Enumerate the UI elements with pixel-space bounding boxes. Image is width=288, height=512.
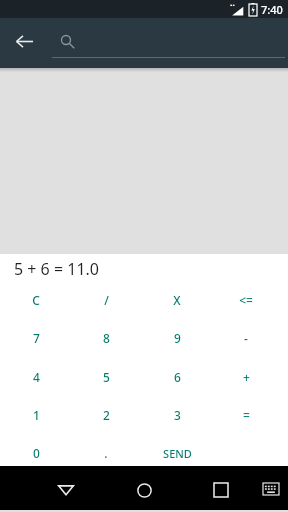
- staticText: 7: [33, 330, 40, 346]
- staticText: 2: [103, 407, 110, 423]
- button[interactable]: 6: [146, 359, 208, 395]
- button[interactable]: Recent apps: [201, 470, 241, 510]
- staticText: 5 + 6 = 11.0: [14, 258, 99, 280]
- staticText: -: [244, 330, 248, 346]
- button[interactable]: X: [146, 282, 208, 318]
- staticText: 7:40: [261, 2, 283, 17]
- button[interactable]: Switch keyboard: [256, 474, 286, 504]
- button[interactable]: 0: [5, 435, 67, 471]
- button[interactable]: +: [215, 359, 277, 395]
- button[interactable]: 7: [5, 320, 67, 356]
- button[interactable]: -: [215, 320, 277, 356]
- staticText: 6: [174, 369, 181, 385]
- staticText: 5: [103, 369, 110, 385]
- staticText: C: [32, 292, 40, 308]
- button[interactable]: 5: [75, 359, 137, 395]
- button[interactable]: 1: [5, 397, 67, 433]
- button[interactable]: Home: [124, 470, 164, 510]
- staticText: +: [243, 369, 250, 385]
- button[interactable]: C: [5, 282, 67, 318]
- button[interactable]: Back: [46, 470, 86, 510]
- staticText: X: [173, 292, 181, 308]
- button[interactable]: SEND: [146, 435, 208, 471]
- button[interactable]: [52, 24, 285, 58]
- button[interactable]: Back: [8, 25, 40, 57]
- button[interactable]: 3: [146, 397, 208, 433]
- staticText: SEND: [163, 446, 192, 461]
- staticText: /: [104, 292, 109, 308]
- staticText: <=: [239, 292, 253, 308]
- button[interactable]: 2: [75, 397, 137, 433]
- button[interactable]: 4: [5, 359, 67, 395]
- staticText: 4: [33, 369, 40, 385]
- staticText: 3: [174, 407, 181, 423]
- staticText: 8: [103, 330, 110, 346]
- button[interactable]: 8: [75, 320, 137, 356]
- button[interactable]: 9: [146, 320, 208, 356]
- button[interactable]: .: [75, 435, 137, 471]
- button[interactable]: =: [215, 397, 277, 433]
- staticText: 9: [174, 330, 181, 346]
- staticText: =: [243, 407, 250, 423]
- staticText: .: [104, 445, 108, 461]
- staticText: 1: [33, 407, 40, 423]
- button[interactable]: <=: [215, 282, 277, 318]
- button[interactable]: /: [75, 282, 137, 318]
- staticText: 0: [33, 445, 40, 461]
